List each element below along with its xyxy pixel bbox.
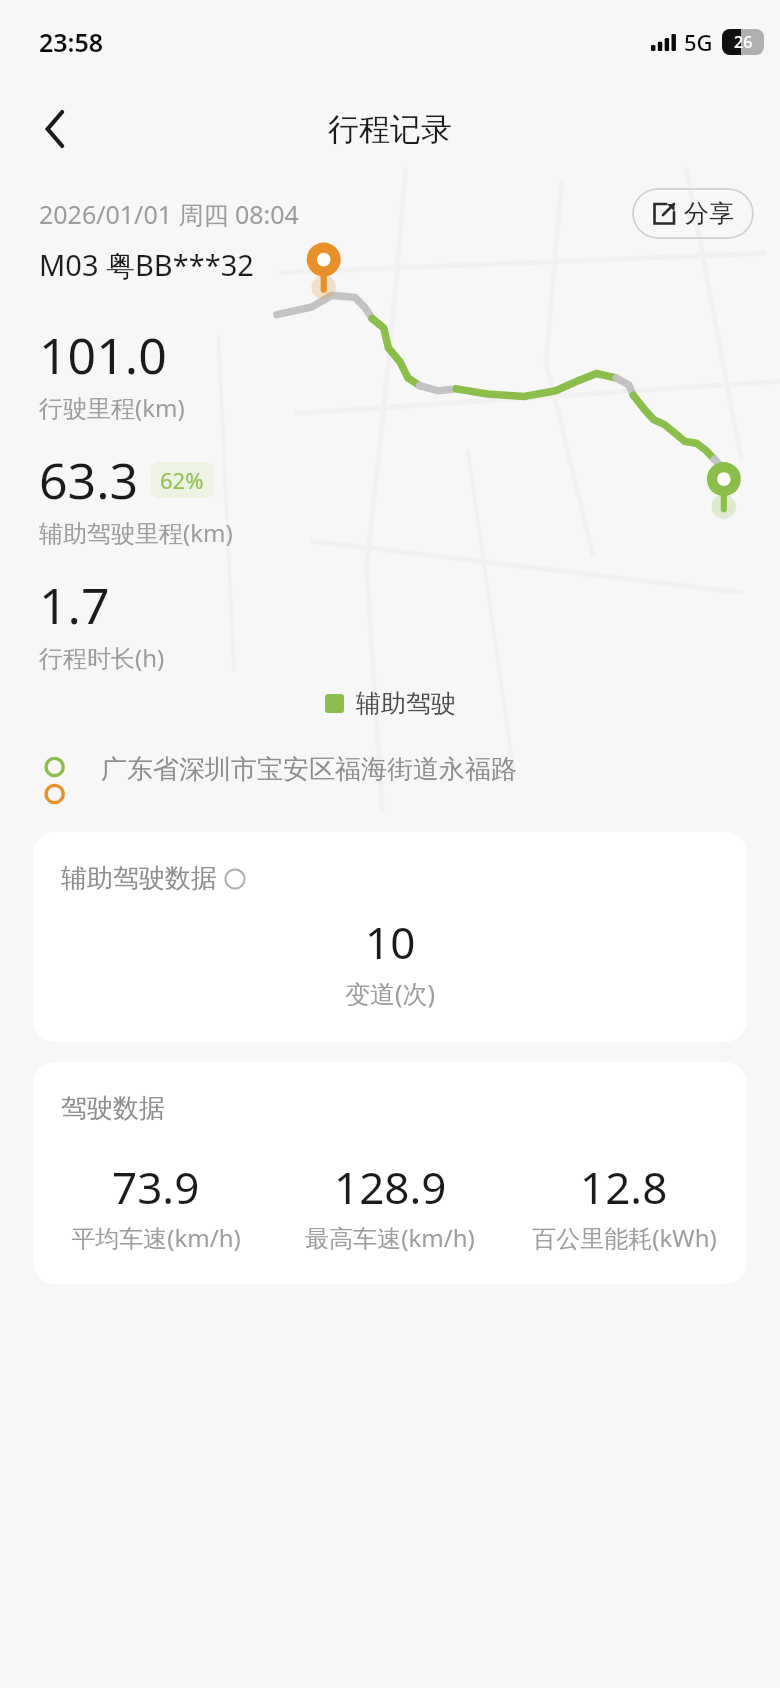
staticText: 12.8 — [580, 1157, 668, 1217]
staticText: 百公里能耗(kWh) — [532, 1221, 717, 1254]
staticText: 辅助驾驶里程(km) — [39, 516, 233, 549]
staticText: 63.3 — [39, 446, 139, 514]
staticText: 最高车速(km/h) — [305, 1221, 475, 1254]
staticText: 平均车速(km/h) — [71, 1221, 241, 1254]
staticText: 73.9 — [112, 1157, 200, 1217]
button[interactable]: Back — [28, 101, 84, 157]
staticText: 101.0 — [39, 321, 167, 389]
staticText: 分享 — [684, 198, 734, 229]
staticText: 2026/01/01 周四 08:04 — [39, 197, 299, 231]
staticText: 行驶里程(km) — [39, 391, 185, 424]
staticText: 广东省深圳市宝安区福海街道永福路 — [101, 753, 517, 786]
staticText: 辅助驾驶数据 — [61, 862, 217, 895]
staticText: 变道(次) — [345, 976, 436, 1010]
staticText: 128.9 — [334, 1157, 447, 1217]
staticText: 辅助驾驶 — [356, 688, 456, 719]
button[interactable]: 辅助驾驶数据 — [33, 832, 747, 1042]
staticText: 行程记录 — [328, 110, 452, 149]
button[interactable]: 分享 — [632, 188, 754, 239]
staticText: 10 — [365, 912, 416, 972]
staticText: 23:58 — [39, 25, 104, 59]
staticText: 行程时长(h) — [39, 641, 165, 674]
staticText: 驾驶数据 — [61, 1092, 165, 1125]
staticText: 62% — [160, 465, 204, 495]
staticText: 26 — [734, 31, 753, 53]
button[interactable]: 驾驶数据 — [33, 1062, 747, 1284]
staticText: M03 粤BB***32 — [39, 245, 254, 285]
staticText: 1.7 — [39, 571, 110, 639]
staticText: 5G — [684, 27, 713, 57]
